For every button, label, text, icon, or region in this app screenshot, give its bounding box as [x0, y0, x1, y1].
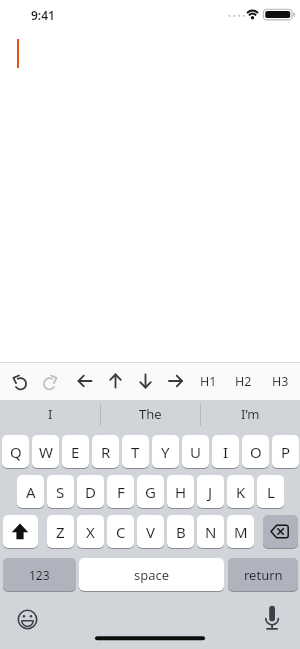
button[interactable]	[195, 363, 223, 399]
button[interactable]: B	[167, 515, 194, 548]
button[interactable]: A	[17, 475, 44, 508]
button[interactable]: P	[272, 435, 299, 468]
button[interactable]: K	[227, 475, 254, 508]
staticText: P	[281, 442, 291, 462]
button[interactable]	[14, 606, 42, 634]
button[interactable]	[230, 363, 258, 399]
staticText: F	[117, 482, 125, 502]
button[interactable]: M	[227, 515, 254, 548]
button[interactable]: R	[92, 435, 119, 468]
staticText: X	[86, 522, 95, 542]
staticText: V	[146, 522, 156, 542]
staticText: U	[190, 442, 201, 462]
staticText: E	[71, 442, 80, 462]
button[interactable]: Q	[2, 435, 29, 468]
staticText: S	[56, 482, 65, 502]
button[interactable]: S	[47, 475, 74, 508]
button[interactable]: G	[137, 475, 164, 508]
staticText: T	[131, 442, 140, 462]
button[interactable]	[71, 363, 99, 399]
button[interactable]: C	[107, 515, 134, 548]
button[interactable]	[258, 606, 286, 634]
button[interactable]: Y	[152, 435, 179, 468]
staticText: 9:41	[31, 7, 55, 23]
button[interactable]: J	[197, 475, 224, 508]
button[interactable]: X	[77, 515, 104, 548]
button[interactable]: E	[62, 435, 89, 468]
staticText: H2	[235, 373, 253, 389]
button[interactable]: I	[212, 435, 239, 468]
button[interactable]	[132, 363, 160, 399]
button[interactable]	[102, 363, 130, 399]
staticText: D	[85, 482, 96, 502]
button[interactable]: W	[32, 435, 59, 468]
staticText: L	[267, 482, 275, 502]
staticText: J	[208, 482, 213, 502]
button[interactable]	[267, 363, 295, 399]
staticText: M	[234, 522, 248, 542]
button[interactable]: F	[107, 475, 134, 508]
button[interactable]	[6, 363, 34, 399]
button[interactable]: I’m	[200, 399, 300, 428]
staticText: 123	[29, 567, 50, 583]
staticText: O	[250, 442, 262, 462]
button[interactable]	[162, 363, 190, 399]
button[interactable]: L	[257, 475, 284, 508]
button[interactable]: U	[182, 435, 209, 468]
staticText: return	[244, 566, 283, 584]
button[interactable]: V	[137, 515, 164, 548]
staticText: H1	[200, 373, 218, 389]
staticText: A	[26, 482, 36, 502]
staticText: H3	[272, 373, 290, 389]
button[interactable]: space	[79, 558, 224, 591]
button[interactable]: D	[77, 475, 104, 508]
staticText: I	[223, 442, 229, 462]
button[interactable]	[3, 515, 38, 548]
button[interactable]	[36, 363, 64, 399]
button[interactable]: return	[228, 558, 298, 591]
button[interactable]: The	[100, 399, 200, 428]
staticText: The	[139, 405, 162, 423]
button[interactable]	[263, 515, 298, 548]
staticText: G	[145, 482, 156, 502]
button[interactable]: O	[242, 435, 269, 468]
staticText: Z	[56, 522, 65, 542]
button[interactable]: N	[197, 515, 224, 548]
staticText: B	[176, 522, 186, 542]
button[interactable]: I	[0, 399, 100, 428]
staticText: space	[134, 566, 170, 584]
button[interactable]: Z	[47, 515, 74, 548]
staticText: Q	[10, 442, 22, 462]
staticText: W	[39, 442, 53, 462]
staticText: N	[205, 522, 217, 542]
staticText: C	[116, 522, 126, 542]
staticText: H	[175, 482, 187, 502]
staticText: I	[48, 405, 53, 423]
staticText: Y	[161, 442, 170, 462]
button[interactable]: H	[167, 475, 194, 508]
button[interactable]: 123	[3, 558, 76, 591]
staticText: I’m	[241, 405, 260, 423]
button[interactable]: T	[122, 435, 149, 468]
staticText: K	[236, 482, 246, 502]
staticText: R	[101, 442, 111, 462]
